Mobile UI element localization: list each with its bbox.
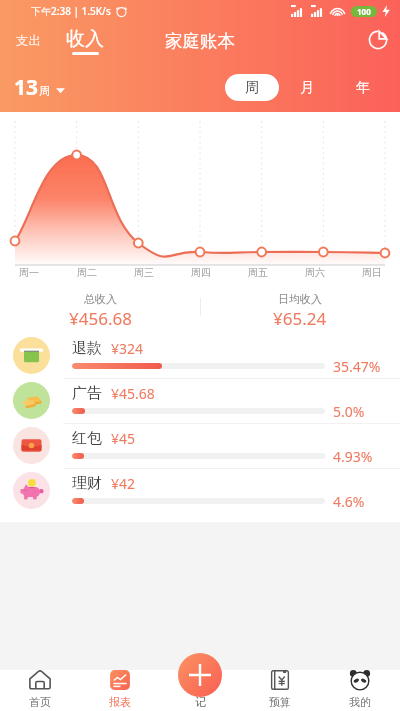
staticText: 首页: [29, 695, 51, 709]
button[interactable]: 红包: [0, 423, 400, 468]
staticText: 记: [195, 695, 206, 709]
staticText: 35.47%: [333, 357, 381, 376]
button[interactable]: 支出: [11, 29, 46, 53]
button[interactable]: 周: [225, 74, 279, 101]
staticText: 周: [245, 79, 259, 97]
staticText: 周四: [191, 266, 211, 279]
staticText: 退款: [72, 339, 102, 358]
button[interactable]: 理财: [0, 468, 400, 513]
button[interactable]: 广告: [0, 378, 400, 423]
button[interactable]: 年: [335, 74, 391, 101]
staticText: 预算: [269, 695, 291, 709]
staticText: 理财: [72, 474, 102, 493]
staticText: ¥65.24: [273, 307, 327, 330]
staticText: 5.0%: [333, 402, 365, 421]
button[interactable]: 首页: [0, 666, 80, 711]
staticText: 4.93%: [333, 447, 373, 466]
staticText: 家庭账本: [165, 30, 235, 52]
button[interactable]: 预算: [240, 666, 320, 711]
staticText: 周五: [248, 266, 268, 279]
staticText: 报表: [109, 695, 131, 709]
staticText: 我的: [349, 695, 371, 709]
button[interactable]: 收入: [66, 27, 104, 55]
staticText: ¥456.68: [69, 307, 132, 330]
button[interactable]: 退款: [0, 333, 400, 378]
button[interactable]: 我的: [320, 666, 400, 711]
staticText: ¥42: [111, 474, 136, 493]
staticText: 月: [300, 79, 314, 97]
staticText: 周六: [305, 266, 325, 279]
staticText: 13: [14, 73, 39, 102]
staticText: 红包: [72, 429, 102, 448]
button[interactable]: 13: [12, 73, 67, 102]
staticText: 广告: [72, 384, 102, 403]
staticText: ¥324: [111, 339, 144, 358]
staticText: 4.6%: [333, 492, 365, 511]
staticText: 周二: [77, 266, 97, 279]
staticText: 周一: [19, 266, 39, 279]
staticText: 收入: [66, 27, 104, 51]
staticText: 年: [356, 79, 370, 97]
staticText: 支出: [16, 33, 41, 49]
staticText: 周: [39, 84, 50, 98]
staticText: 周三: [134, 266, 154, 279]
staticText: 总收入: [84, 292, 117, 306]
staticText: 下午2:38 | 1.5K/s: [31, 4, 111, 18]
staticText: 日均收入: [278, 292, 322, 306]
staticText: 100: [357, 6, 371, 17]
staticText: ¥45.68: [111, 384, 155, 403]
button[interactable]: 月: [279, 74, 335, 101]
staticText: ¥45: [111, 429, 136, 448]
button[interactable]: Statistics: [368, 30, 388, 50]
button[interactable]: Add record: [178, 653, 222, 697]
button[interactable]: 报表: [80, 666, 160, 711]
staticText: 周日: [362, 266, 382, 279]
